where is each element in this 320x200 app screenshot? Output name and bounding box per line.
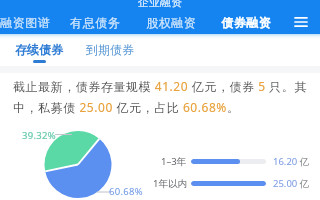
staticText: 有息债务 — [70, 15, 120, 30]
staticText: 股权融资 — [146, 15, 196, 30]
staticText: 存续债券 — [15, 42, 63, 57]
staticText: 融资图谱 — [0, 15, 50, 30]
staticText: 到期债券 — [86, 42, 134, 57]
staticText: 企业融资 — [138, 0, 182, 9]
button[interactable]: 存续债券 — [15, 42, 63, 63]
staticText: 16.20 亿 — [273, 155, 310, 168]
staticText: 1年以内 — [153, 177, 187, 190]
staticText: 25.00 亿 — [273, 177, 310, 190]
staticText: 60.68% — [109, 185, 143, 198]
staticText: 39.32% — [22, 129, 56, 142]
staticText: 1–3年 — [161, 155, 187, 168]
button[interactable]: 1年以内 — [150, 176, 318, 190]
button[interactable]: 股权融资 — [146, 12, 196, 32]
button[interactable]: 融资图谱 — [0, 12, 50, 32]
staticText: 截止最新，债券存量规模 41.20 亿元，债券 5 只。其中，私募债 25.00… — [13, 78, 311, 115]
button[interactable]: 债券融资 — [221, 12, 271, 32]
button[interactable]: 有息债务 — [70, 12, 120, 32]
button[interactable]: Menu — [291, 13, 311, 31]
staticText: 债券融资 — [221, 15, 271, 30]
button[interactable]: 1–3年 — [150, 154, 318, 168]
button[interactable]: 到期债券 — [86, 42, 134, 60]
